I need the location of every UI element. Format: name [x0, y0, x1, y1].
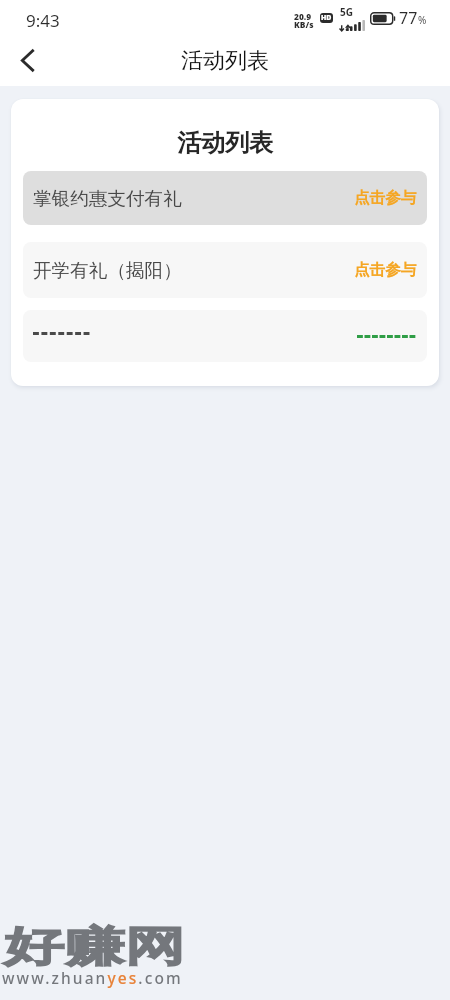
button[interactable]: 掌银约惠支付有礼 — [23, 171, 427, 225]
staticText: 好赚网 — [4, 921, 185, 974]
staticText: 掌银约惠支付有礼 — [33, 187, 182, 210]
staticText: KB/s — [294, 19, 314, 30]
button[interactable]: Back — [0, 36, 50, 86]
staticText: 77 — [399, 7, 418, 29]
button[interactable]: 开学有礼（揭阳） — [23, 242, 427, 298]
staticText: 9:43 — [26, 9, 60, 32]
staticText: 活动列表 — [11, 128, 439, 158]
staticText: 活动列表 — [181, 47, 269, 75]
staticText: 5G — [340, 5, 353, 19]
staticText: www.zhuanyes.com — [2, 967, 183, 988]
staticText: 20.9 — [294, 11, 312, 22]
button[interactable] — [23, 310, 427, 362]
staticText: 点击参与 — [354, 188, 417, 208]
staticText: 点击参与 — [354, 260, 417, 280]
staticText: % — [418, 13, 427, 27]
staticText: 开学有礼（揭阳） — [33, 259, 182, 282]
staticText: HD — [321, 13, 332, 23]
